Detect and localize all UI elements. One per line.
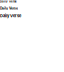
staticText: Daily Verse xyxy=(0,6,18,10)
staticText: Daily Verse xyxy=(0,13,21,18)
staticText: Daily Verse xyxy=(0,0,17,3)
